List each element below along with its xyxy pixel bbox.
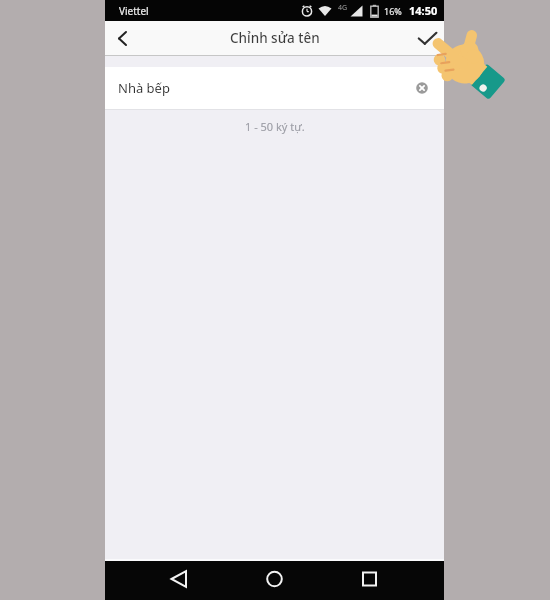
button[interactable] — [105, 561, 218, 600]
button[interactable]: Nhà bếp — [105, 67, 444, 109]
staticText: 4G — [338, 3, 348, 13]
button[interactable] — [414, 25, 440, 51]
button[interactable] — [218, 561, 331, 600]
staticText: 14:50 — [409, 3, 438, 18]
staticText: 16% — [384, 5, 402, 17]
button[interactable] — [331, 561, 444, 600]
button[interactable] — [111, 27, 133, 49]
staticText: Viettel — [119, 4, 149, 18]
staticText: Nhà bếp — [118, 79, 170, 97]
staticText: Chỉnh sửa tên — [230, 29, 320, 47]
staticText: 1 - 50 ký tự. — [245, 119, 305, 134]
